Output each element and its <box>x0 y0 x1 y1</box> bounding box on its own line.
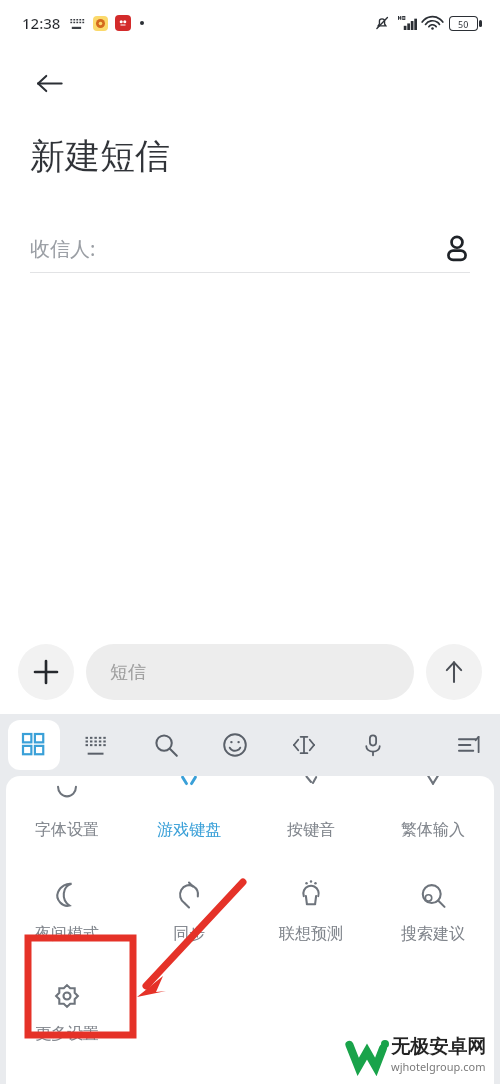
staticText: 同步 <box>173 924 205 944</box>
staticText: 更多设置 <box>35 1024 99 1044</box>
button[interactable]: List <box>446 722 492 768</box>
staticText: 按键音 <box>287 820 335 840</box>
button[interactable]: 按键音 <box>250 784 372 858</box>
button[interactable]: 字体设置 <box>6 784 128 858</box>
staticText: 字体设置 <box>35 820 99 840</box>
button[interactable]: Emoji <box>212 722 258 768</box>
staticText: 无极安卓网 <box>391 1035 486 1059</box>
staticText: 短信 <box>110 661 146 684</box>
button[interactable]: Cursor move <box>281 722 327 768</box>
staticText: 繁体输入 <box>401 820 465 840</box>
staticText: 游戏键盘 <box>157 820 221 840</box>
staticText: 搜索建议 <box>401 924 465 944</box>
button[interactable]: 联想预测 <box>250 872 372 958</box>
button[interactable]: Voice input <box>350 722 396 768</box>
button[interactable]: Keyboard <box>74 722 120 768</box>
button[interactable]: Back <box>26 60 72 106</box>
staticText: 收信人: <box>30 235 96 262</box>
button[interactable]: Add attachment <box>18 644 74 700</box>
button[interactable]: 繁体输入 <box>372 784 494 858</box>
other: Choose contact <box>444 235 470 261</box>
button[interactable]: Send <box>426 644 482 700</box>
button[interactable]: 短信 <box>86 644 414 700</box>
button[interactable]: 游戏键盘 <box>128 784 250 858</box>
button[interactable]: Panel <box>8 720 60 770</box>
staticText: 50 <box>458 18 469 30</box>
staticText: 12:38 <box>22 13 61 33</box>
staticText: 夜间模式 <box>35 924 99 944</box>
button[interactable]: 搜索建议 <box>372 872 494 958</box>
button[interactable]: 夜间模式 <box>6 872 128 958</box>
button[interactable]: Search <box>143 722 189 768</box>
staticText: wjhotelgroup.com <box>391 1059 486 1074</box>
button[interactable]: 同步 <box>128 872 250 958</box>
staticText: 新建短信 <box>30 134 170 178</box>
staticText: 联想预测 <box>279 924 343 944</box>
button[interactable]: 更多设置 <box>6 972 128 1058</box>
button[interactable]: 收信人: <box>30 224 470 273</box>
